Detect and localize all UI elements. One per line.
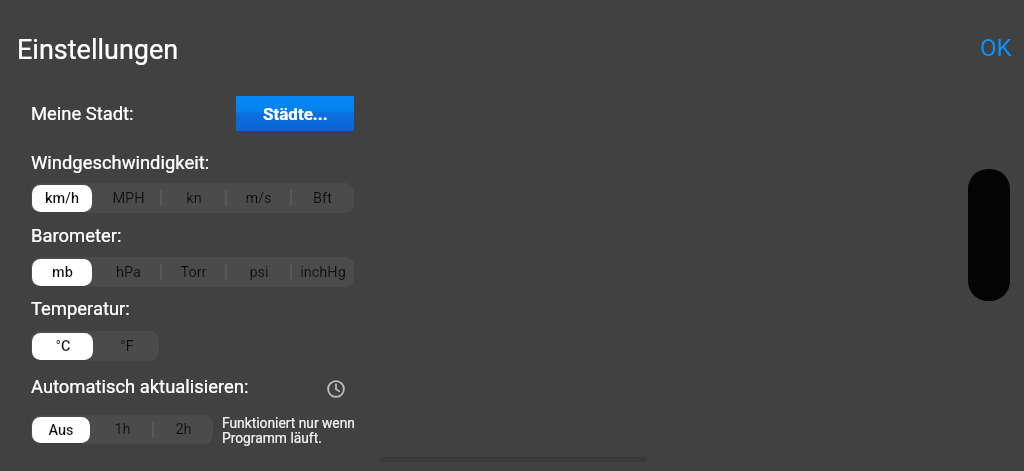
staticText: OK [980, 34, 1012, 62]
staticText: kn [186, 190, 202, 207]
staticText: Städte... [263, 104, 328, 124]
button[interactable]: 2h [153, 415, 213, 444]
staticText: °F [120, 338, 134, 355]
staticText: Automatisch aktualisieren: [31, 376, 249, 398]
button[interactable]: Aus [32, 417, 90, 443]
staticText: Aus [48, 422, 74, 439]
button[interactable]: Aus [31, 415, 92, 444]
button[interactable]: mb [31, 257, 96, 287]
button[interactable]: Bft [291, 183, 354, 213]
staticText: Torr [180, 264, 207, 281]
button[interactable]: mb [32, 259, 92, 286]
button[interactable]: kn [161, 183, 226, 213]
button[interactable]: OK [967, 24, 1024, 70]
staticText: m/s [245, 190, 272, 207]
staticText: Bft [313, 190, 332, 207]
staticText: Aus [49, 421, 74, 438]
staticText: 1h [114, 421, 131, 438]
staticText: Temperatur: [31, 298, 130, 320]
staticText: Windgeschwindigkeit: [31, 152, 210, 174]
button[interactable]: MPH [96, 183, 161, 213]
staticText: inchHg [300, 264, 346, 281]
button[interactable]: Städte... [236, 96, 354, 131]
button[interactable]: °F [95, 331, 159, 361]
staticText: Meine Stadt: [31, 103, 134, 125]
staticText: 2h [175, 421, 192, 438]
staticText: Barometer: [31, 225, 122, 247]
button[interactable]: hPa [96, 257, 161, 287]
staticText: mb [53, 264, 74, 281]
staticText: °C [56, 338, 71, 355]
button[interactable]: °C [31, 331, 95, 361]
staticText: hPa [116, 264, 141, 281]
button[interactable]: m/s [226, 183, 291, 213]
button[interactable]: inchHg [291, 257, 354, 287]
button[interactable]: Torr [161, 257, 226, 287]
staticText: km/h [45, 190, 79, 207]
staticText: °C [55, 338, 71, 355]
staticText: Einstellungen [17, 34, 179, 66]
staticText: km/h [46, 190, 81, 207]
staticText: Funktioniert nur wenn Programm läuft. [222, 415, 355, 446]
staticText: MPH [112, 190, 145, 207]
button[interactable]: km/h [31, 183, 96, 213]
button[interactable]: km/h [32, 185, 92, 212]
staticText: psi [249, 264, 269, 281]
staticText: mb [52, 264, 73, 281]
button[interactable]: Information [325, 378, 346, 399]
button[interactable]: 1h [92, 415, 153, 444]
button[interactable]: °C [32, 333, 93, 360]
button[interactable]: psi [226, 257, 291, 287]
